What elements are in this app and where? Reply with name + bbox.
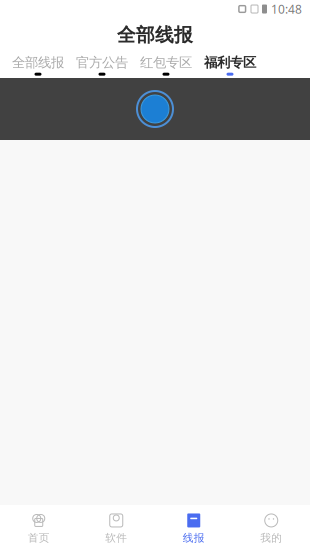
staticText: 软件 xyxy=(105,531,127,544)
staticText: 全部线报 xyxy=(12,54,64,71)
staticText: 全部线报 xyxy=(117,23,193,46)
button[interactable]: 软件 xyxy=(77,505,155,552)
button[interactable]: 线报 xyxy=(155,505,232,552)
button[interactable]: 全部线报 xyxy=(6,52,70,78)
button[interactable]: 红包专区 xyxy=(134,52,198,78)
staticText: 福利专区 xyxy=(204,54,256,71)
staticText: 线报 xyxy=(183,531,205,544)
staticText: 红包专区 xyxy=(140,54,192,71)
staticText: 官方公告 xyxy=(76,54,128,71)
staticText: 10:48 xyxy=(271,1,302,17)
button[interactable]: 福利专区 xyxy=(198,52,262,78)
button[interactable]: 首页 xyxy=(0,505,77,552)
staticText: 我的 xyxy=(260,531,282,544)
button[interactable]: 我的 xyxy=(232,505,310,552)
staticText: 首页 xyxy=(28,531,50,544)
button[interactable]: 官方公告 xyxy=(70,52,134,78)
